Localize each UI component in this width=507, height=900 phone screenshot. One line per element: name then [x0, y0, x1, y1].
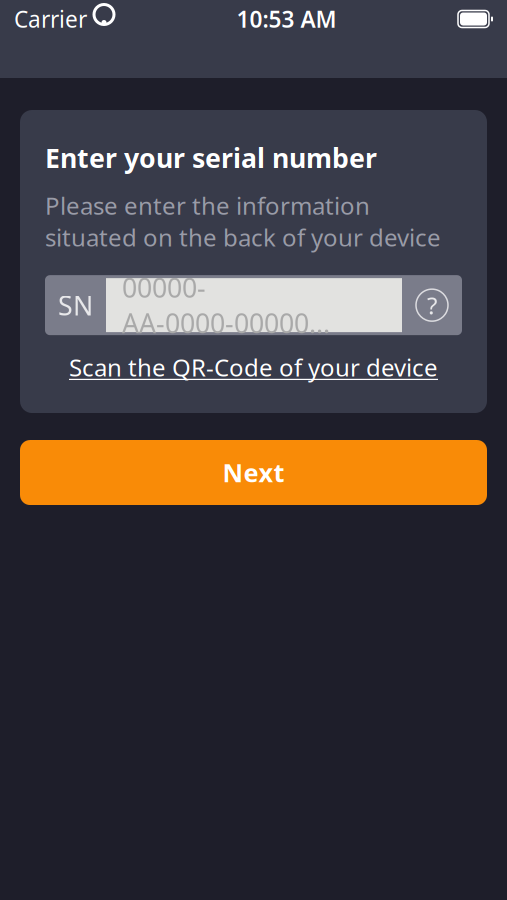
staticText: ? [427, 289, 437, 321]
staticText: Next [222, 456, 284, 489]
staticText: Carrier [14, 4, 87, 34]
button[interactable]: Scan the QR-Code of your device [45, 344, 462, 390]
staticText: Please enter the information situated on… [45, 189, 441, 253]
staticText: 10:53 AM [236, 4, 336, 34]
staticText: Scan the QR-Code of your device [69, 351, 438, 383]
staticText: SN [58, 287, 93, 323]
staticText: 00000-AA-0000-00000... [122, 270, 330, 340]
button[interactable]: Next [20, 440, 487, 505]
button[interactable]: Help about the serial number [402, 275, 462, 335]
staticText: Enter your serial number [45, 140, 377, 175]
